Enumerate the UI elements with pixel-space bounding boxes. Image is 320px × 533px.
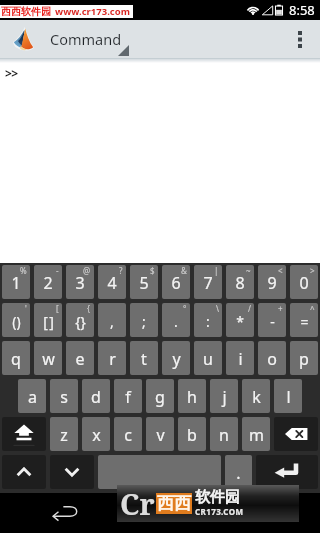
- button[interactable]: o: [258, 341, 286, 375]
- button[interactable]: m: [242, 417, 270, 451]
- button[interactable]: .: [162, 303, 190, 337]
- button[interactable]: Shift: [2, 417, 46, 451]
- button[interactable]: (): [2, 303, 30, 337]
- button[interactable]: r: [98, 341, 126, 375]
- button[interactable]: g: [146, 379, 174, 413]
- staticText: 8:58: [289, 1, 315, 19]
- button[interactable]: i: [226, 341, 254, 375]
- button[interactable]: w: [34, 341, 62, 375]
- staticText: l: [286, 386, 291, 408]
- staticText: %: [20, 265, 27, 276]
- staticText: r: [109, 348, 116, 370]
- button[interactable]: b: [178, 417, 206, 451]
- button[interactable]: k: [242, 379, 270, 413]
- staticText: 0: [299, 272, 309, 294]
- staticText: n: [219, 424, 229, 446]
- staticText: d: [91, 386, 101, 408]
- button[interactable]: j: [210, 379, 238, 413]
- button[interactable]: Backspace: [274, 417, 318, 451]
- button[interactable]: s: [50, 379, 78, 413]
- button[interactable]: 4: [98, 265, 126, 299]
- staticText: -: [270, 312, 275, 331]
- button[interactable]: 1: [2, 265, 30, 299]
- staticText: :: [206, 312, 210, 331]
- button[interactable]: =: [290, 303, 318, 337]
- button[interactable]: Next: [50, 455, 94, 489]
- staticText: Cr: [120, 484, 155, 521]
- button[interactable]: 0: [290, 265, 318, 299]
- staticText: \: [216, 303, 219, 314]
- staticText: www.cr173.com: [55, 5, 130, 18]
- button[interactable]: 9: [258, 265, 286, 299]
- staticText: [: [56, 303, 59, 314]
- staticText: {: [87, 303, 91, 314]
- staticText: ;: [142, 312, 146, 331]
- button[interactable]: x: [82, 417, 110, 451]
- staticText: c: [124, 424, 132, 446]
- button[interactable]: u: [194, 341, 222, 375]
- staticText: *: [236, 312, 244, 331]
- staticText: ': [25, 303, 27, 314]
- staticText: ?: [119, 265, 123, 276]
- staticText: w: [42, 348, 55, 370]
- staticText: f: [125, 386, 131, 408]
- button[interactable]: t: [130, 341, 158, 375]
- staticText: h: [187, 386, 197, 408]
- button[interactable]: e: [66, 341, 94, 375]
- button[interactable]: {}: [66, 303, 94, 337]
- staticText: a: [28, 386, 37, 408]
- staticText: z: [60, 424, 68, 446]
- button[interactable]: y: [162, 341, 190, 375]
- button[interactable]: 2: [34, 265, 62, 299]
- button[interactable]: a: [18, 379, 46, 413]
- button[interactable]: More options: [280, 20, 320, 58]
- button[interactable]: ,: [98, 303, 126, 337]
- button[interactable]: Previous: [2, 455, 46, 489]
- staticText: /: [248, 303, 251, 314]
- button[interactable]: :: [194, 303, 222, 337]
- staticText: 8: [235, 272, 245, 294]
- button[interactable]: -: [258, 303, 286, 337]
- staticText: .: [174, 312, 178, 331]
- button[interactable]: h: [178, 379, 206, 413]
- button[interactable]: [ ]: [34, 303, 62, 337]
- button[interactable]: p: [290, 341, 318, 375]
- button[interactable]: d: [82, 379, 110, 413]
- button[interactable]: .: [225, 455, 252, 489]
- button[interactable]: 8: [226, 265, 254, 299]
- button[interactable]: Space: [98, 455, 221, 489]
- button[interactable]: c: [114, 417, 142, 451]
- button[interactable]: z: [50, 417, 78, 451]
- staticText: {}: [75, 312, 86, 331]
- button[interactable]: Back: [49, 498, 81, 528]
- button[interactable]: 3: [66, 265, 94, 299]
- button[interactable]: Command: [0, 20, 320, 58]
- button[interactable]: n: [210, 417, 238, 451]
- button[interactable]: q: [2, 341, 30, 375]
- staticText: 6: [171, 272, 181, 294]
- button[interactable]: 6: [162, 265, 190, 299]
- button[interactable]: 7: [194, 265, 222, 299]
- staticText: y: [172, 348, 181, 370]
- staticText: 西西: [157, 493, 191, 514]
- staticText: i: [238, 348, 243, 370]
- button[interactable]: *: [226, 303, 254, 337]
- button[interactable]: Enter: [256, 455, 318, 489]
- button[interactable]: 5: [130, 265, 158, 299]
- staticText: q: [11, 348, 21, 370]
- staticText: m: [249, 424, 264, 446]
- staticText: +: [278, 303, 283, 314]
- button[interactable]: l: [274, 379, 302, 413]
- staticText: 7: [203, 272, 213, 294]
- button[interactable]: f: [114, 379, 142, 413]
- button[interactable]: v: [146, 417, 174, 451]
- staticText: .: [236, 462, 241, 484]
- staticText: 4: [107, 272, 117, 294]
- staticText: 5: [139, 272, 149, 294]
- staticText: (): [12, 312, 21, 331]
- staticText: [ ]: [43, 312, 54, 331]
- staticText: 2: [43, 272, 53, 294]
- button[interactable]: ;: [130, 303, 158, 337]
- staticText: @: [83, 265, 91, 276]
- staticText: CR173.COM: [195, 506, 244, 517]
